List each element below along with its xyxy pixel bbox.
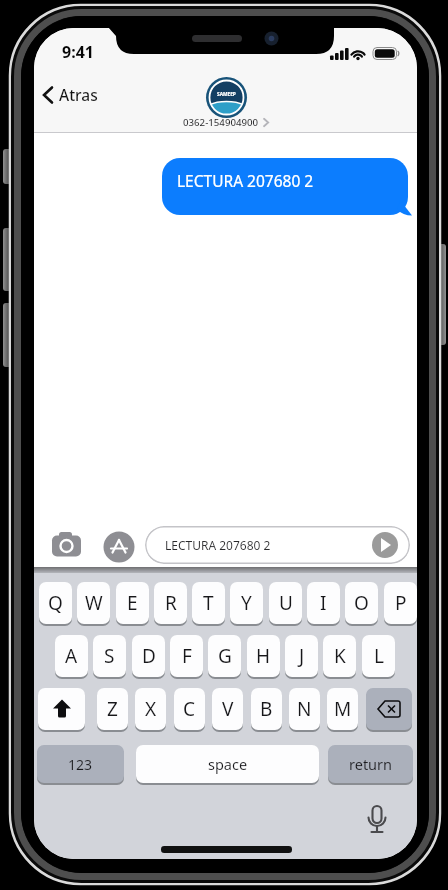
button[interactable] [50, 531, 86, 561]
staticText: 0362-154904900 [183, 116, 259, 129]
button[interactable]: Y [230, 582, 263, 624]
button[interactable]: A [55, 635, 88, 677]
button[interactable]: H [247, 635, 280, 677]
button[interactable]: T [192, 582, 225, 624]
staticText: Atras [59, 84, 98, 105]
button[interactable]: O [345, 582, 378, 624]
button[interactable]: SAMEEP [206, 77, 247, 118]
staticText: space [208, 754, 248, 774]
staticText: G [218, 643, 232, 669]
button[interactable]: space [136, 745, 319, 783]
staticText: Y [241, 590, 252, 616]
staticText: 9:41 [62, 41, 94, 63]
button[interactable]: 0362-154904900 [34, 116, 417, 129]
button[interactable]: E [116, 582, 149, 624]
button[interactable]: G [208, 635, 241, 677]
staticText: I [320, 590, 327, 616]
staticText: J [299, 643, 305, 669]
staticText: C [183, 696, 196, 722]
button[interactable]: F [170, 635, 203, 677]
staticText: Q [48, 590, 63, 616]
button[interactable] [103, 531, 135, 563]
staticText: return [349, 754, 393, 774]
button[interactable]: R [154, 582, 187, 624]
button[interactable]: return [328, 745, 413, 783]
staticText: W [85, 590, 103, 616]
staticText: P [395, 590, 407, 616]
button[interactable]: Atras [38, 80, 102, 109]
button[interactable]: K [323, 635, 356, 677]
button[interactable]: J [285, 635, 318, 677]
button[interactable]: N [289, 688, 320, 730]
staticText: V [222, 696, 234, 722]
staticText: U [279, 590, 293, 616]
staticText: N [297, 696, 312, 722]
button[interactable]: L [362, 635, 395, 677]
staticText: M [334, 696, 352, 722]
staticText: E [127, 590, 138, 616]
button[interactable]: M [327, 688, 358, 730]
button[interactable]: S [93, 635, 126, 677]
staticText: B [260, 696, 273, 722]
staticText: 123 [68, 755, 93, 774]
button[interactable] [38, 688, 85, 730]
button[interactable]: 123 [37, 745, 124, 783]
staticText: LECTURA 207680 2 [177, 170, 314, 191]
staticText: R [165, 590, 177, 616]
staticText: L [374, 643, 384, 669]
button[interactable]: P [384, 582, 417, 624]
button[interactable]: LECTURA 207680 2 [145, 526, 410, 564]
button[interactable]: U [269, 582, 302, 624]
staticText: Z [107, 696, 118, 722]
staticText: X [145, 696, 157, 722]
staticText: S [104, 643, 115, 669]
button[interactable]: C [174, 688, 205, 730]
button[interactable]: D [132, 635, 165, 677]
button[interactable]: X [135, 688, 166, 730]
button[interactable]: B [251, 688, 282, 730]
button[interactable]: LECTURA 207680 2 [162, 158, 408, 215]
staticText: A [65, 643, 78, 669]
staticText: LECTURA 207680 2 [165, 537, 271, 553]
staticText: O [354, 590, 369, 616]
staticText: H [256, 643, 271, 669]
button[interactable] [366, 688, 412, 730]
staticText: SAMEEP [217, 91, 236, 98]
staticText: D [142, 643, 156, 669]
button[interactable]: Q [39, 582, 72, 624]
staticText: K [334, 643, 346, 669]
staticText: F [182, 643, 192, 669]
button[interactable]: V [212, 688, 243, 730]
button[interactable]: Z [97, 688, 128, 730]
button[interactable]: I [307, 582, 340, 624]
staticText: T [203, 590, 214, 616]
button[interactable]: W [77, 582, 110, 624]
